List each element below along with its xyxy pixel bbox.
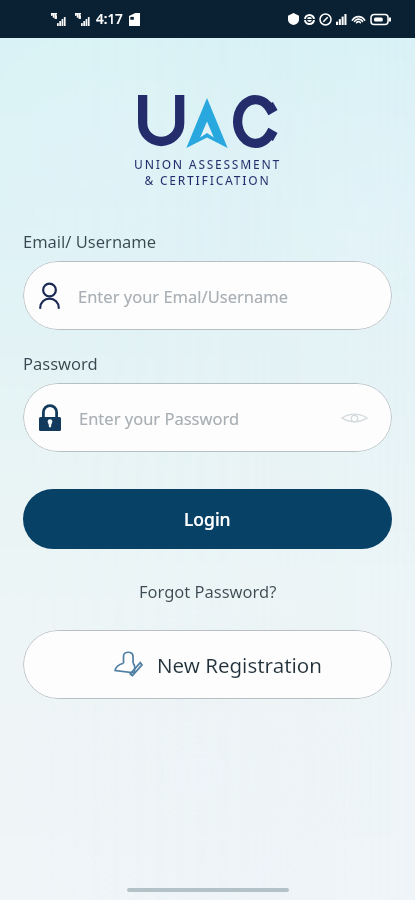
staticText: Password <box>23 352 98 374</box>
button[interactable]: New Registration <box>23 630 392 699</box>
staticText: Enter your Password <box>79 407 240 429</box>
staticText: Email/ Username <box>23 230 157 252</box>
staticText: UNION ASSESSMENT <box>134 156 281 172</box>
button[interactable]: Enter your Password <box>23 383 392 452</box>
button[interactable]: Forgot Password? <box>131 577 285 605</box>
staticText: & CERTIFICATION <box>144 172 271 188</box>
staticText: New Registration <box>157 651 322 679</box>
staticText: 4:17 <box>96 10 123 28</box>
button[interactable]: Login <box>23 489 392 549</box>
button[interactable]: Enter your Emal/Username <box>23 261 392 330</box>
staticText: Login <box>184 507 231 531</box>
button[interactable]: Show password <box>339 403 369 433</box>
staticText: Enter your Emal/Username <box>78 285 288 307</box>
